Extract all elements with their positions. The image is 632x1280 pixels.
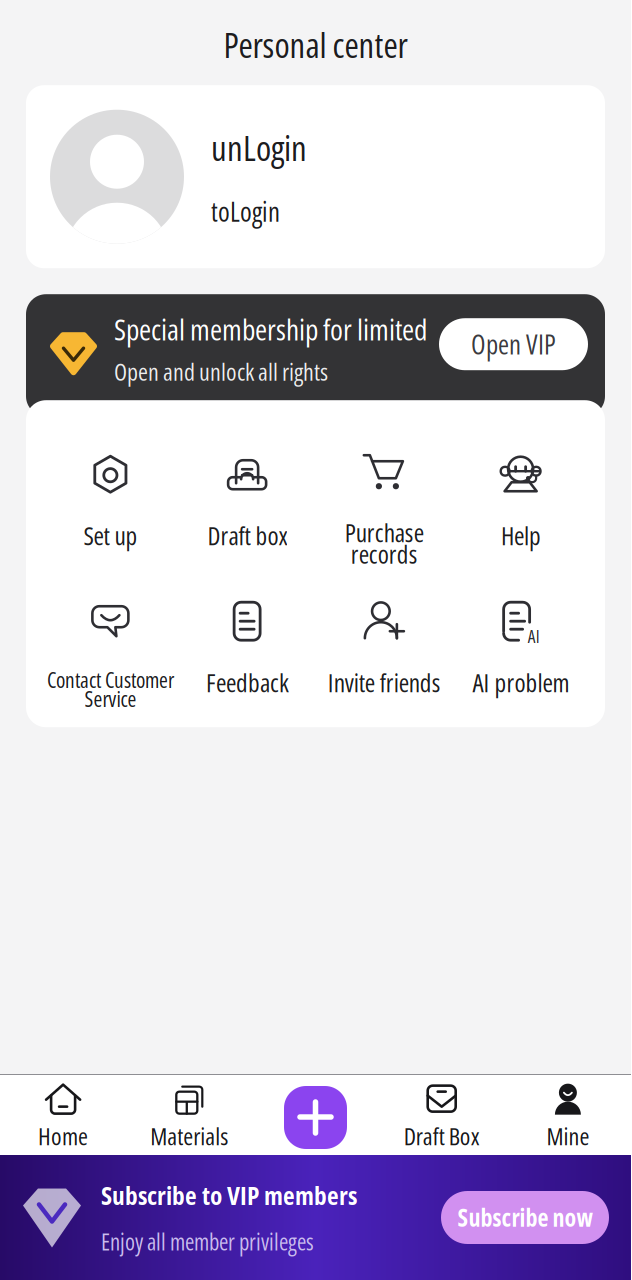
button[interactable]: Create	[284, 1086, 347, 1149]
button[interactable]: Open VIP	[439, 318, 588, 370]
button[interactable]: Mine	[505, 1083, 631, 1152]
staticText: unLogin	[211, 124, 307, 171]
staticText: Personal center	[223, 21, 407, 68]
button[interactable]: Subscribe now	[441, 1191, 609, 1244]
staticText: Set up	[83, 518, 137, 553]
staticText: Enjoy all member privileges	[101, 1226, 314, 1257]
staticText: Home	[38, 1120, 88, 1152]
button[interactable]: Materials	[126, 1083, 252, 1152]
button[interactable]: AI	[452, 597, 589, 715]
button[interactable]: Purchase records	[315, 450, 452, 568]
staticText: Draft Box	[404, 1120, 480, 1152]
staticText: Materials	[150, 1120, 228, 1152]
button[interactable]: Help	[452, 450, 589, 568]
staticText: Invite friends	[327, 665, 440, 700]
staticText: AI	[528, 624, 540, 648]
staticText: toLogin	[211, 193, 280, 229]
button[interactable]: Set up	[42, 450, 179, 568]
button[interactable]: Feedback	[179, 597, 316, 715]
staticText: Help	[501, 518, 541, 553]
staticText: Open VIP	[471, 326, 556, 362]
button[interactable]: Draft box	[179, 450, 316, 568]
staticText: Special membership for limited	[114, 309, 427, 349]
staticText: Purchase records	[344, 515, 423, 571]
staticText: Open and unlock all rights	[114, 355, 328, 388]
button[interactable]: Invite friends	[315, 597, 452, 715]
button[interactable]: unLogin	[26, 85, 605, 268]
staticText: Mine	[546, 1120, 589, 1152]
staticText: AI problem	[472, 665, 569, 700]
staticText: Feedback	[206, 665, 289, 700]
button[interactable]: Home	[0, 1083, 126, 1152]
staticText: Draft box	[207, 518, 287, 553]
staticText: Subscribe to VIP members	[101, 1178, 357, 1212]
staticText: Subscribe now	[457, 1201, 592, 1234]
button[interactable]: Draft Box	[379, 1083, 505, 1152]
staticText: Contact Customer Service	[47, 665, 174, 713]
button[interactable]: Contact Customer Service	[42, 597, 179, 715]
